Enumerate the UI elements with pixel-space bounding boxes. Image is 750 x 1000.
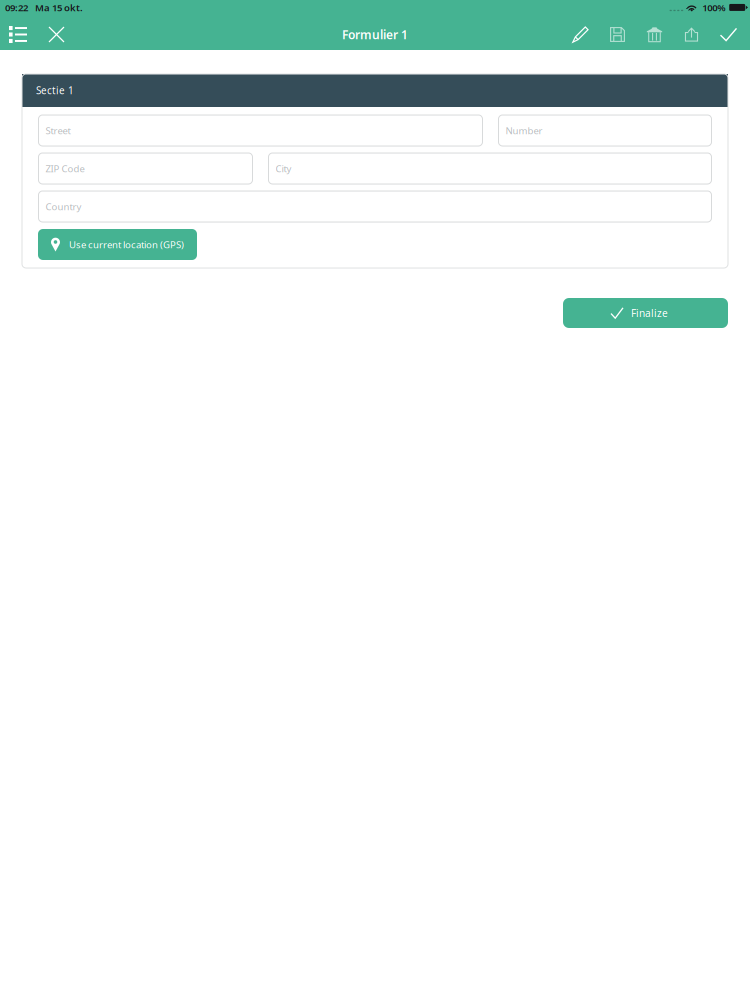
staticText: Sectie 1 <box>36 84 74 97</box>
button[interactable]: Done <box>710 19 747 50</box>
button[interactable]: Share <box>673 19 710 50</box>
button[interactable]: Finalize <box>563 298 728 328</box>
button[interactable]: Edit <box>562 19 599 50</box>
button[interactable]: Delete <box>636 19 673 50</box>
staticText: City <box>275 162 291 175</box>
staticText: Use current location (GPS) <box>69 238 184 251</box>
staticText: ZIP Code <box>45 162 84 175</box>
staticText: Finalize <box>631 306 668 320</box>
button[interactable]: Save <box>599 19 636 50</box>
staticText: Formulier 1 <box>342 26 408 43</box>
button[interactable]: Close <box>32 19 81 50</box>
staticText: Street <box>45 124 70 137</box>
staticText: 100% <box>702 1 725 14</box>
staticText: Number <box>505 124 542 137</box>
button[interactable]: Menu <box>4 19 32 50</box>
button[interactable]: Use current location (GPS) <box>38 229 197 260</box>
staticText: 09:22 <box>5 1 28 14</box>
staticText: Country <box>45 200 81 213</box>
staticText: Ma 15 okt. <box>35 1 83 14</box>
